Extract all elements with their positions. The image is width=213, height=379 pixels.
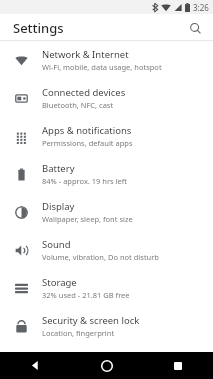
button[interactable]: Storage xyxy=(0,269,213,307)
staticText: 32% used - 21.81 GB free xyxy=(42,290,130,300)
staticText: Battery xyxy=(42,162,75,175)
button[interactable]: Battery xyxy=(0,155,213,193)
button[interactable]: Sound xyxy=(0,231,213,269)
button[interactable]: Display xyxy=(0,193,213,231)
staticText: Settings xyxy=(13,19,64,37)
staticText: Location, fingerprint xyxy=(42,328,115,338)
staticText: Wi‑Fi, mobile, data usage, hotspot xyxy=(42,62,162,72)
staticText: Wallpaper, sleep, font size xyxy=(42,214,133,224)
staticText: Network & Internet xyxy=(42,48,129,61)
staticText: 84% - approx. 19 hrs left xyxy=(42,176,128,186)
button[interactable]: Connected devices xyxy=(0,79,213,117)
staticText: 3:26 xyxy=(193,2,209,13)
staticText: Apps & notifications xyxy=(42,124,132,137)
staticText: Security & screen lock xyxy=(42,314,140,327)
staticText: Display xyxy=(42,200,75,213)
staticText: Bluetooth, NFC, cast xyxy=(42,100,114,110)
button[interactable]: Apps & notifications xyxy=(0,117,213,155)
button[interactable]: Security & screen lock xyxy=(0,307,213,345)
staticText: Storage xyxy=(42,276,77,289)
staticText: Permissions, default apps xyxy=(42,138,133,148)
button[interactable]: Network & Internet xyxy=(0,41,213,79)
staticText: Connected devices xyxy=(42,86,126,99)
staticText: Sound xyxy=(42,238,71,251)
button[interactable]: Back xyxy=(0,352,71,379)
button[interactable]: Search xyxy=(183,16,207,40)
staticText: Volume, vibration, Do not disturb xyxy=(42,252,159,262)
staticText: User & accounts xyxy=(42,356,115,369)
button[interactable]: Recent apps xyxy=(142,352,213,379)
button[interactable]: User & accounts xyxy=(0,345,213,379)
button[interactable]: Home xyxy=(71,352,142,379)
